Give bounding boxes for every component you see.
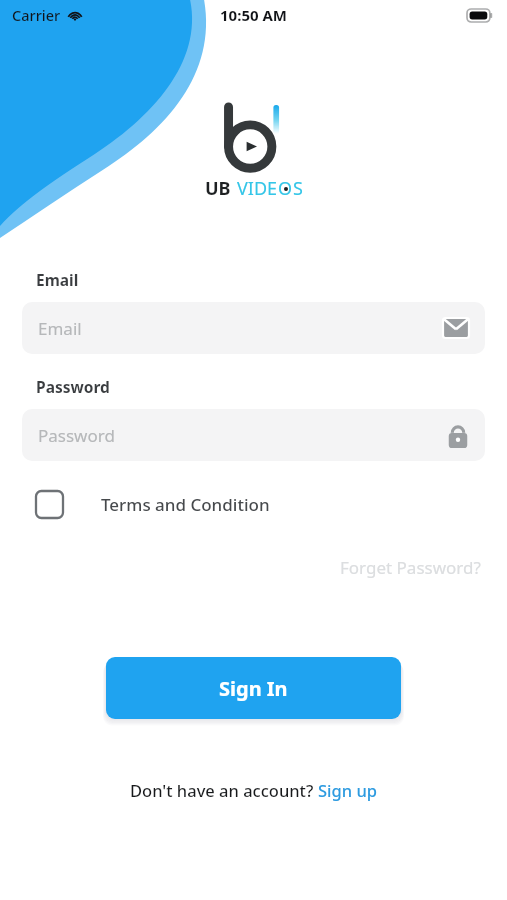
- staticText: Email: [36, 269, 79, 290]
- button[interactable]: Don't have an account?: [130, 779, 377, 801]
- button[interactable]: Email: [22, 302, 485, 354]
- staticText: Forget Password?: [340, 556, 481, 579]
- staticText: Terms and Condition: [101, 493, 270, 516]
- button[interactable]: Sign In: [106, 657, 401, 719]
- staticText: 10:50 AM: [220, 5, 287, 25]
- staticText: VIDE: [237, 176, 278, 201]
- staticText: O: [278, 176, 293, 201]
- staticText: Don't have an account?: [130, 779, 318, 801]
- staticText: S: [293, 176, 303, 201]
- button[interactable]: Forget Password?: [0, 556, 481, 579]
- staticText: UB: [205, 176, 231, 201]
- staticText: Password: [36, 376, 110, 397]
- staticText: Email: [38, 317, 82, 340]
- staticText: Password: [38, 424, 115, 447]
- other: Email: [443, 318, 469, 338]
- staticText: Carrier: [12, 5, 61, 25]
- button[interactable]: Password: [22, 409, 485, 461]
- other: Accept terms and conditions: [36, 491, 63, 518]
- button[interactable]: Accept terms and conditions: [36, 491, 270, 518]
- staticText: Sign up: [318, 779, 377, 801]
- staticText: Sign In: [219, 675, 288, 702]
- other: Password: [447, 422, 469, 448]
